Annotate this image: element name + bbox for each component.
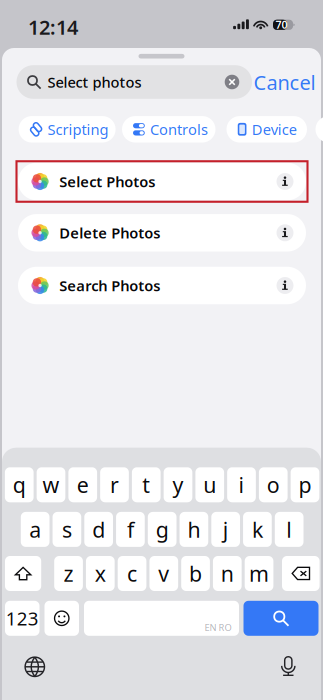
staticText: r	[110, 471, 119, 499]
button[interactable]: a	[21, 512, 49, 547]
staticText: d	[92, 515, 105, 543]
staticText: EN RO	[204, 621, 231, 633]
staticText: Scripting	[48, 120, 109, 139]
button[interactable]: Scripting	[19, 116, 116, 143]
button[interactable]: Controls	[122, 116, 215, 143]
staticText: Select photos	[47, 72, 141, 92]
button[interactable]: Shift	[5, 556, 41, 591]
staticText: v	[158, 559, 169, 588]
staticText: j	[223, 515, 229, 543]
staticText: s	[62, 515, 72, 543]
button[interactable]: Device	[226, 116, 307, 143]
button[interactable]: Select photos	[16, 65, 252, 99]
button[interactable]: g	[148, 512, 176, 547]
button[interactable]: l	[275, 512, 303, 547]
button[interactable]: Delete	[282, 556, 320, 591]
staticText: 70	[275, 17, 287, 32]
staticText: e	[77, 471, 89, 499]
button[interactable]: Search Photos	[18, 267, 306, 304]
staticText: n	[221, 559, 234, 588]
staticText: h	[187, 515, 200, 543]
button[interactable]: x	[86, 556, 115, 591]
staticText: u	[203, 471, 216, 499]
staticText: Device	[252, 120, 297, 139]
button[interactable]: e	[68, 467, 97, 502]
staticText: q	[13, 471, 26, 499]
staticText: 12:14	[28, 14, 78, 40]
button[interactable]: Delete Photos	[18, 214, 306, 252]
staticText: i	[238, 471, 244, 499]
staticText: Delete Photos	[59, 223, 160, 243]
staticText: b	[189, 559, 202, 588]
button[interactable]: space	[84, 601, 239, 636]
staticText: k	[252, 515, 263, 543]
button[interactable]: Select Photos	[18, 163, 306, 200]
button[interactable]: w	[37, 467, 65, 502]
staticText: m	[249, 559, 269, 588]
staticText: f	[127, 515, 134, 543]
staticText: c	[127, 559, 137, 588]
button[interactable]: Dictation	[279, 656, 298, 677]
staticText: t	[142, 471, 150, 499]
button[interactable]: n	[213, 556, 242, 591]
staticText: x	[95, 559, 106, 588]
button[interactable]: z	[54, 556, 83, 591]
staticText: Cancel	[253, 69, 315, 95]
button[interactable]: q	[5, 467, 34, 502]
button[interactable]: y	[164, 467, 192, 502]
button[interactable]: u	[195, 467, 224, 502]
button[interactable]: t	[132, 467, 161, 502]
staticText: a	[29, 515, 41, 543]
button[interactable]: k	[243, 512, 272, 547]
staticText: o	[267, 471, 280, 499]
staticText: z	[63, 559, 73, 588]
button[interactable]: f	[116, 512, 145, 547]
staticText: Select Photos	[59, 172, 155, 191]
button[interactable]: j	[211, 512, 240, 547]
button[interactable]: Search	[243, 601, 318, 636]
button[interactable]: b	[181, 556, 210, 591]
staticText: p	[298, 471, 311, 499]
staticText: l	[286, 515, 292, 543]
button[interactable]: 123	[5, 601, 39, 636]
staticText: w	[42, 471, 59, 499]
button[interactable]: p	[291, 467, 319, 502]
button[interactable]: i	[227, 467, 256, 502]
button[interactable]: Cancel	[255, 65, 313, 99]
staticText: y	[172, 471, 183, 499]
button[interactable]: h	[180, 512, 208, 547]
button[interactable]: v	[149, 556, 178, 591]
button[interactable]: o	[259, 467, 288, 502]
button[interactable]: s	[52, 512, 81, 547]
button[interactable]: d	[84, 512, 113, 547]
button[interactable]: Next keyboard	[24, 656, 45, 677]
staticText: 123	[6, 606, 39, 631]
button[interactable]: r	[100, 467, 129, 502]
staticText: Controls	[150, 120, 208, 139]
button[interactable]: m	[245, 556, 273, 591]
staticText: g	[156, 515, 169, 543]
button[interactable]: c	[118, 556, 146, 591]
staticText: Search Photos	[59, 276, 160, 295]
button[interactable]: Emoji	[44, 601, 79, 636]
